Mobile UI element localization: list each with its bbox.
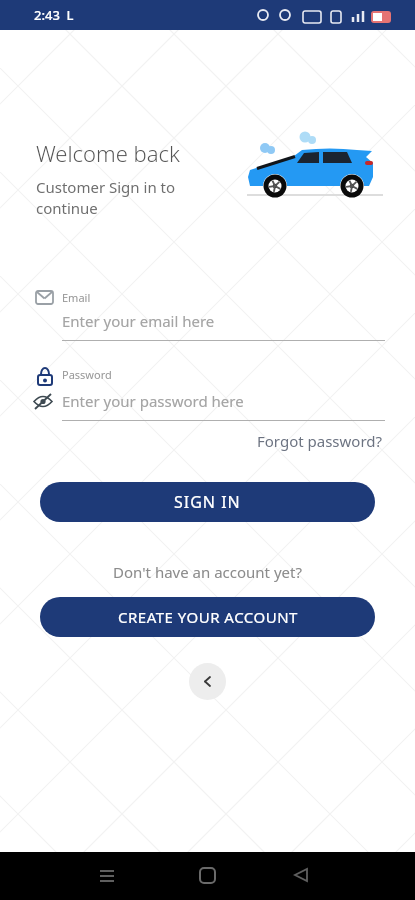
staticText: Password (62, 367, 112, 382)
staticText: Email (62, 290, 91, 305)
button[interactable] (189, 663, 226, 700)
button[interactable] (200, 868, 215, 883)
button[interactable]: Forgot password? (257, 431, 383, 451)
button[interactable]: Enter your email here (62, 311, 215, 331)
button[interactable]: Enter your password here (62, 391, 244, 411)
button[interactable] (294, 868, 308, 882)
button[interactable] (98, 867, 116, 885)
staticText: CREATE YOUR ACCOUNT (118, 607, 298, 627)
staticText: Don't have an account yet? (0, 562, 415, 582)
button[interactable]: SIGN IN (40, 482, 375, 522)
staticText: Welcome back (36, 138, 180, 168)
staticText: Customer Sign in to continue (36, 177, 176, 219)
button[interactable]: CREATE YOUR ACCOUNT (40, 597, 375, 637)
staticText: SIGN IN (174, 491, 241, 513)
staticText: 2:43 L (34, 6, 74, 24)
